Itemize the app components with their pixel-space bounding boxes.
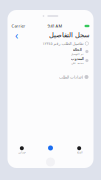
staticText: السلة	[76, 151, 82, 154]
staticText: تم التوصيل	[70, 52, 83, 55]
button[interactable]: إعدادات الطلب	[10, 73, 90, 81]
button[interactable]: Home	[36, 145, 65, 154]
button[interactable]: Account	[7, 146, 36, 154]
button[interactable]: المندوب	[10, 56, 90, 65]
staticText: إعدادات الطلب	[58, 75, 82, 79]
staticText: محمد علي	[71, 61, 83, 64]
button[interactable]: تفاصيل الطلب رقم ١٢٣٤٥	[10, 40, 90, 47]
staticText: تفاصيل الطلب رقم ١٢٣٤٥	[42, 41, 83, 46]
staticText: 9:41 AM	[47, 23, 62, 29]
staticText: المندوب	[70, 56, 83, 61]
staticText: ‹	[15, 28, 18, 42]
staticText: حسابي	[18, 151, 26, 154]
staticText: سجل التفاصيل	[48, 31, 89, 39]
staticText: الحالة	[72, 47, 81, 52]
staticText: Carrier	[11, 23, 25, 29]
button[interactable]: Back	[11, 30, 21, 40]
button[interactable]: Cart	[65, 146, 93, 154]
button[interactable]: الحالة	[10, 47, 90, 56]
